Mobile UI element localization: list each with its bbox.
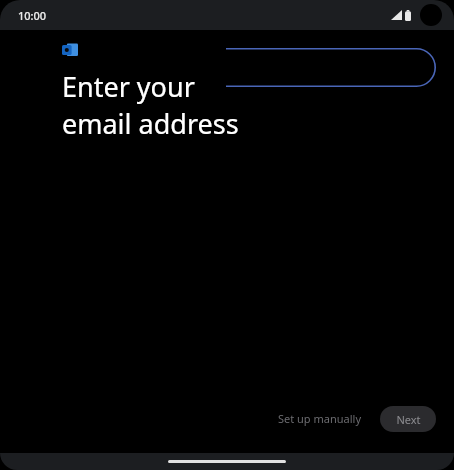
button[interactable]: Next xyxy=(380,406,436,432)
staticText: Next xyxy=(396,412,421,427)
staticText: 10:00 xyxy=(18,8,47,23)
staticText: email address xyxy=(62,105,239,142)
button[interactable]: Set up manually xyxy=(268,403,372,434)
staticText: Set up manually xyxy=(278,411,362,426)
staticText: Enter your xyxy=(62,68,195,105)
button[interactable]: Email address input xyxy=(226,48,436,87)
